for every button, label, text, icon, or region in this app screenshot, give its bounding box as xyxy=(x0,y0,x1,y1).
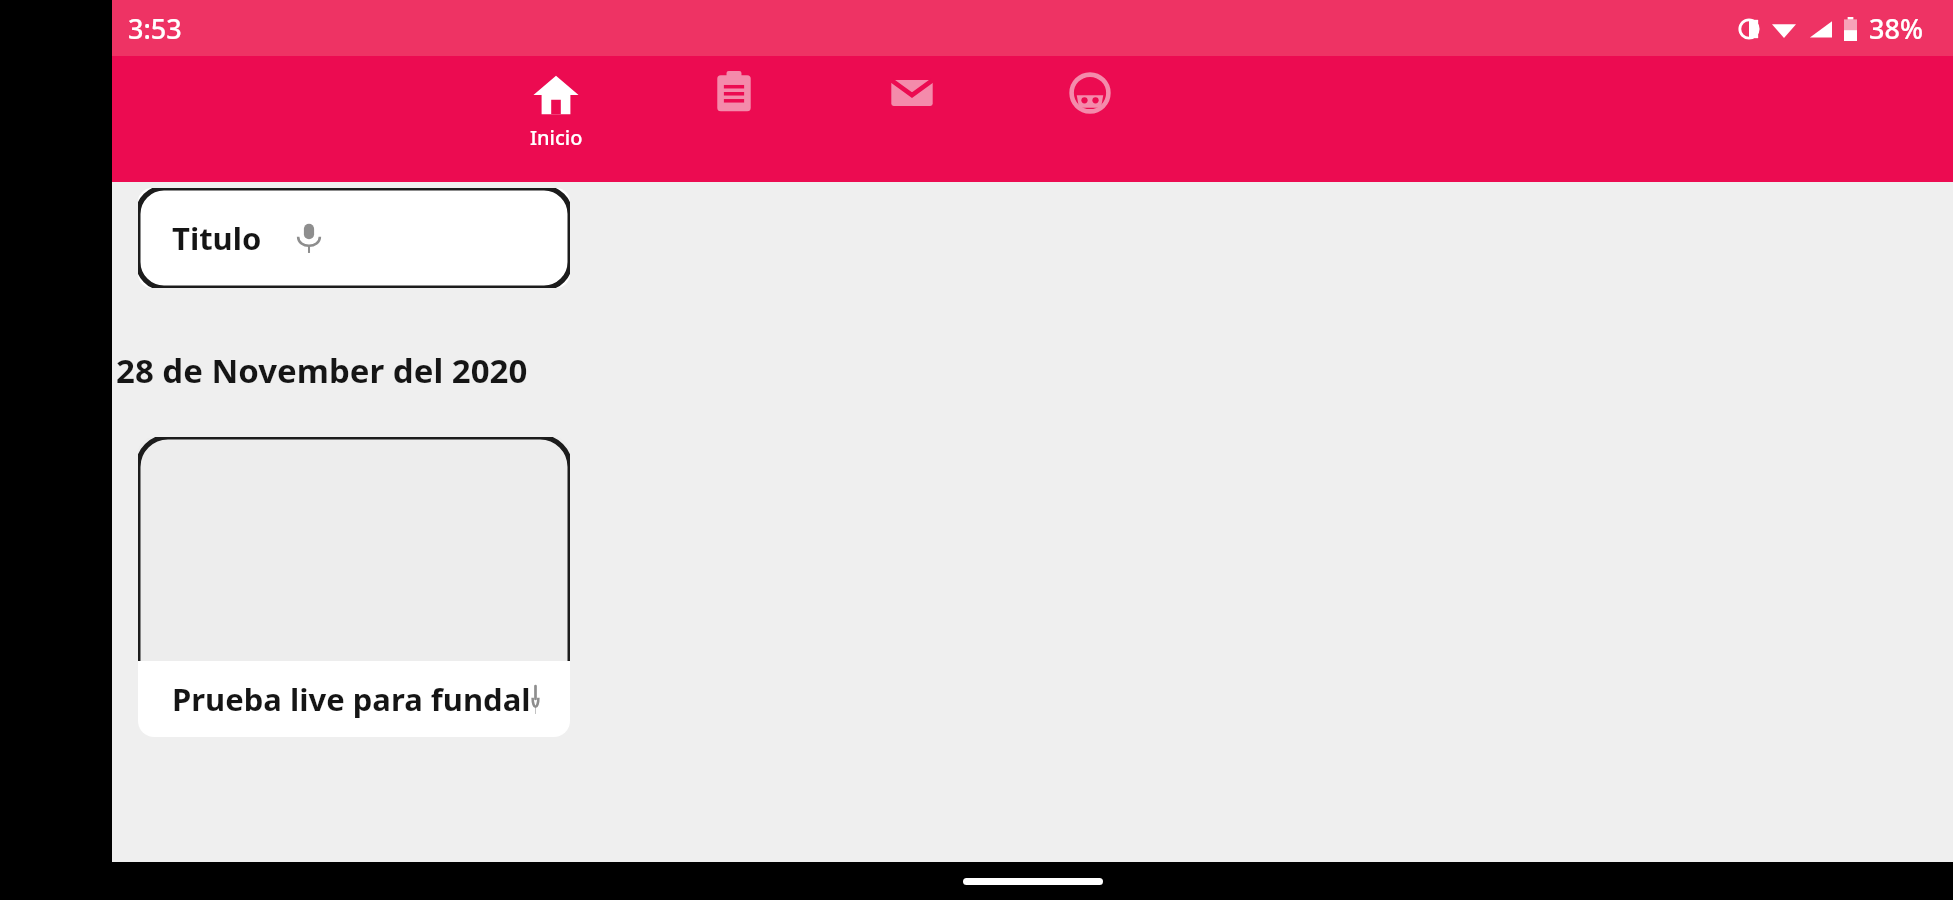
other: Dictar xyxy=(292,221,326,255)
button[interactable]: Tareas xyxy=(680,56,788,182)
button[interactable]: Inicio xyxy=(502,56,610,182)
button[interactable]: Prueba live para fundal xyxy=(138,437,570,737)
staticText: 3:53 xyxy=(128,10,182,47)
button[interactable]: Perfil xyxy=(1036,56,1144,182)
staticText: Prueba live para fundal xyxy=(172,678,531,720)
other: Dictar xyxy=(531,682,540,716)
button[interactable]: Mensajes xyxy=(858,56,966,182)
staticText: 28 de November del 2020 xyxy=(116,348,528,393)
staticText: Inicio xyxy=(530,124,583,151)
staticText: Titulo xyxy=(172,217,262,259)
button[interactable]: Titulo xyxy=(138,188,570,288)
staticText: 38% xyxy=(1869,10,1923,47)
